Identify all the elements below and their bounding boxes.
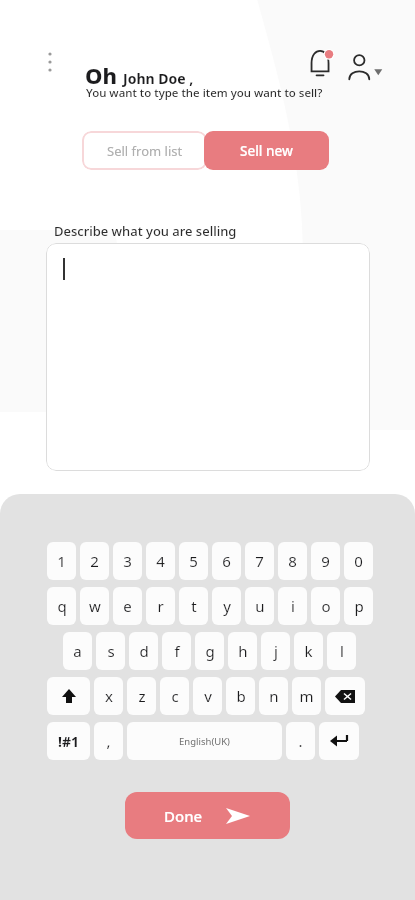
staticText: . — [298, 731, 303, 751]
button[interactable]: 1 — [47, 542, 76, 580]
button[interactable]: 0 — [344, 542, 373, 580]
staticText: a — [73, 641, 82, 661]
staticText: k — [304, 641, 313, 661]
staticText: 0 — [354, 551, 363, 571]
staticText: g — [205, 641, 215, 661]
button[interactable]: b — [226, 677, 255, 715]
staticText: d — [139, 641, 149, 661]
staticText: m — [299, 686, 314, 706]
button[interactable]: h — [228, 632, 257, 670]
button[interactable]: Shift — [47, 677, 90, 715]
button[interactable]: l — [327, 632, 356, 670]
button[interactable]: Done — [125, 792, 290, 839]
button[interactable]: !#1 — [47, 722, 90, 760]
button[interactable]: m — [292, 677, 321, 715]
button[interactable]: Backspace — [325, 677, 365, 715]
button[interactable]: 6 — [212, 542, 241, 580]
button[interactable]: 8 — [278, 542, 307, 580]
staticText: q — [57, 596, 67, 616]
button[interactable]: t — [179, 587, 208, 625]
staticText: s — [107, 641, 115, 661]
staticText: 6 — [222, 551, 231, 571]
staticText: !#1 — [58, 732, 79, 751]
button[interactable]: 7 — [245, 542, 274, 580]
button[interactable]: c — [160, 677, 189, 715]
button[interactable]: Enter — [319, 722, 359, 760]
staticText: l — [340, 641, 344, 661]
button[interactable]: i — [278, 587, 307, 625]
button[interactable]: n — [259, 677, 288, 715]
staticText: John Doe , — [123, 69, 194, 88]
staticText: Done — [164, 806, 203, 826]
staticText: x — [105, 686, 113, 706]
staticText: 5 — [189, 551, 198, 571]
staticText: You want to type the item you want to se… — [86, 85, 323, 101]
button[interactable]: 2 — [80, 542, 109, 580]
staticText: r — [157, 596, 164, 616]
staticText: Sell from list — [107, 142, 183, 160]
button[interactable]: Notifications — [305, 48, 337, 80]
button[interactable]: o — [311, 587, 340, 625]
button[interactable]: q — [47, 587, 76, 625]
staticText: v — [204, 686, 212, 706]
button[interactable]: f — [162, 632, 191, 670]
staticText: e — [123, 596, 132, 616]
staticText: n — [269, 686, 279, 706]
button[interactable]: u — [245, 587, 274, 625]
staticText: u — [255, 596, 265, 616]
staticText: Sell new — [240, 142, 293, 160]
button[interactable]: s — [96, 632, 125, 670]
button[interactable]: x — [94, 677, 123, 715]
button[interactable]: e — [113, 587, 142, 625]
staticText: 3 — [123, 551, 132, 571]
button[interactable]: 5 — [179, 542, 208, 580]
staticText: 8 — [288, 551, 297, 571]
button[interactable]: y — [212, 587, 241, 625]
button[interactable]: 4 — [146, 542, 175, 580]
staticText: Oh — [85, 60, 117, 90]
button[interactable]: a — [63, 632, 92, 670]
staticText: 1 — [57, 551, 66, 571]
staticText: h — [238, 641, 248, 661]
button[interactable]: p — [344, 587, 373, 625]
button[interactable]: . — [286, 722, 315, 760]
button[interactable]: k — [294, 632, 323, 670]
staticText: 9 — [321, 551, 330, 571]
button[interactable]: z — [127, 677, 156, 715]
staticText: o — [321, 596, 331, 616]
staticText: c — [171, 686, 179, 706]
staticText: t — [191, 596, 197, 616]
staticText: b — [236, 686, 246, 706]
staticText: z — [138, 686, 146, 706]
button[interactable]: r — [146, 587, 175, 625]
button[interactable]: Sell new — [204, 131, 329, 170]
staticText: f — [174, 641, 180, 661]
button[interactable]: d — [129, 632, 158, 670]
button[interactable]: v — [193, 677, 222, 715]
button[interactable]: w — [80, 587, 109, 625]
button[interactable]: 9 — [311, 542, 340, 580]
button[interactable]: , — [94, 722, 123, 760]
staticText: 7 — [255, 551, 264, 571]
button[interactable] — [46, 243, 370, 471]
button[interactable]: 3 — [113, 542, 142, 580]
button[interactable]: g — [195, 632, 224, 670]
staticText: 2 — [90, 551, 99, 571]
staticText: Describe what you are selling — [54, 222, 237, 240]
button[interactable]: j — [261, 632, 290, 670]
staticText: English(UK) — [179, 735, 230, 748]
staticText: y — [223, 596, 231, 616]
button[interactable]: More options — [38, 48, 62, 76]
button[interactable]: Sell from list — [82, 131, 207, 170]
staticText: 4 — [156, 551, 165, 571]
staticText: j — [274, 641, 278, 661]
button[interactable]: English(UK) — [127, 722, 282, 760]
staticText: , — [106, 731, 111, 751]
staticText: w — [89, 596, 101, 616]
staticText: i — [291, 596, 295, 616]
staticText: p — [354, 596, 364, 616]
button[interactable]: Account — [345, 48, 379, 82]
